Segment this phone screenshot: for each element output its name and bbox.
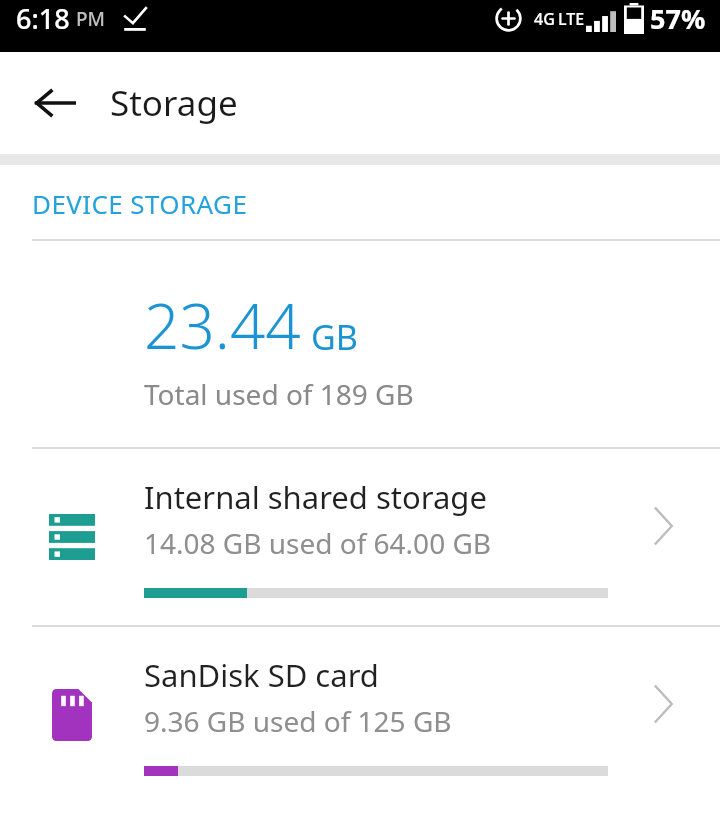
staticText: SanDisk SD card [144,654,379,696]
button[interactable]: SanDisk SD card [0,627,720,803]
staticText: 57% [650,0,706,37]
staticText: 14.08 GB used of 64.00 GB [144,524,492,562]
staticText: Storage [110,79,238,127]
staticText: 9.36 GB used of 125 GB [144,702,452,740]
button[interactable]: Internal shared storage [0,449,720,625]
staticText: Internal shared storage [144,476,487,518]
other: Internal shared storage [0,514,144,560]
staticText: Total used of 189 GB [144,375,414,413]
other: SanDisk SD card [0,689,144,741]
staticText: DEVICE STORAGE [32,186,248,221]
staticText: 4G [534,8,555,30]
staticText: 23.44 [144,283,301,367]
staticText: PM [76,6,106,32]
staticText: 6:18 [16,0,70,37]
staticText: GB [311,314,358,360]
staticText: LTE [558,8,585,30]
button[interactable]: Back [22,70,88,136]
